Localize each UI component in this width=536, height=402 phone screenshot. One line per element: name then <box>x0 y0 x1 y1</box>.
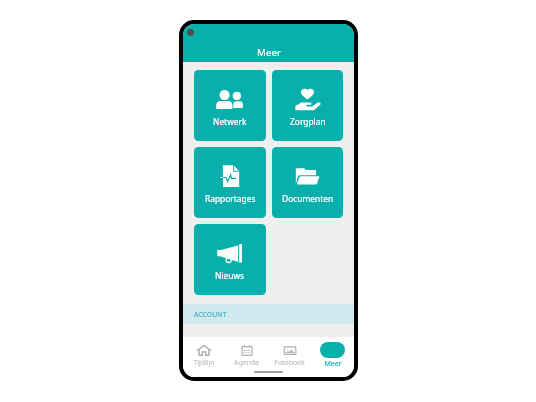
button[interactable]: Fotoboek <box>268 337 311 369</box>
staticText: Documenten <box>282 193 334 204</box>
staticText: Rapportages <box>205 193 256 204</box>
staticText: Netwerk <box>213 116 247 127</box>
button[interactable]: Rapportages <box>194 147 266 218</box>
button[interactable]: Netwerk <box>194 70 266 141</box>
staticText: Tijdlijn <box>193 358 215 367</box>
staticText: Zorgplan <box>290 116 326 127</box>
staticText: Meer <box>324 359 342 368</box>
staticText: Nieuws <box>215 270 245 281</box>
button[interactable]: ACCOUNT <box>183 304 354 324</box>
staticText: Fotoboek <box>274 358 305 367</box>
button[interactable]: Agenda <box>225 337 268 369</box>
button[interactable]: Zorgplan <box>272 70 343 141</box>
button[interactable]: Tijdlijn <box>183 337 225 369</box>
staticText: ACCOUNT <box>194 310 227 319</box>
staticText: Meer <box>257 46 281 59</box>
button[interactable]: Meer <box>311 337 354 369</box>
button[interactable]: Documenten <box>272 147 343 218</box>
button[interactable]: Nieuws <box>194 224 266 295</box>
staticText: Agenda <box>234 358 259 367</box>
